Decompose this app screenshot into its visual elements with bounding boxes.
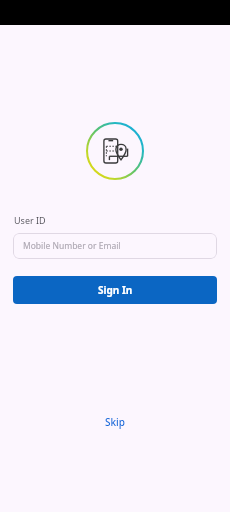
staticText: Skip	[105, 415, 125, 429]
other: App logo	[100, 136, 130, 166]
button[interactable]: Sign In	[13, 276, 217, 304]
staticText: Mobile Number or Email	[23, 240, 121, 252]
button[interactable]: Mobile Number or Email	[13, 233, 217, 259]
staticText: User ID	[14, 214, 46, 226]
staticText: Sign In	[98, 283, 133, 297]
button[interactable]: Skip	[93, 411, 137, 433]
